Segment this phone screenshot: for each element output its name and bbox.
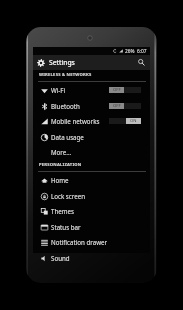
staticText: Home: [51, 176, 69, 184]
staticText: PERSONALIZATION: [39, 162, 82, 168]
staticText: Lock screen: [51, 192, 86, 200]
staticText: WIRELESS & NETWORKS: [39, 72, 92, 78]
button[interactable]: Home: [33, 172, 150, 188]
button[interactable]: Notification drawer: [33, 234, 150, 250]
staticText: Notification drawer: [51, 238, 108, 246]
staticText: Wi-Fi: [51, 86, 66, 94]
button[interactable]: Lock screen: [33, 188, 150, 204]
staticText: More...: [51, 148, 72, 156]
button[interactable]: Mobile networks: [33, 113, 150, 129]
staticText: OFF: [113, 103, 121, 109]
staticText: Bluetooth: [51, 102, 80, 110]
button[interactable]: Bluetooth: [33, 98, 150, 114]
staticText: Data usage: [51, 133, 84, 141]
button[interactable]: Themes: [33, 203, 150, 219]
staticText: Status bar: [51, 223, 81, 231]
button[interactable]: Search: [135, 56, 148, 69]
staticText: Themes: [51, 207, 74, 215]
button[interactable]: Wi-Fi: [33, 82, 150, 98]
staticText: 6:07: [137, 48, 147, 55]
staticText: ON: [130, 118, 137, 124]
staticText: Sound: [51, 254, 70, 262]
button[interactable]: More...: [33, 144, 150, 160]
button[interactable]: Sound: [33, 250, 150, 266]
staticText: Mobile networks: [51, 117, 100, 125]
staticText: OFF: [113, 87, 121, 93]
button[interactable]: Data usage: [33, 129, 150, 145]
staticText: Settings: [49, 58, 75, 67]
button[interactable]: Status bar: [33, 219, 150, 235]
staticText: 26%: [125, 48, 135, 55]
